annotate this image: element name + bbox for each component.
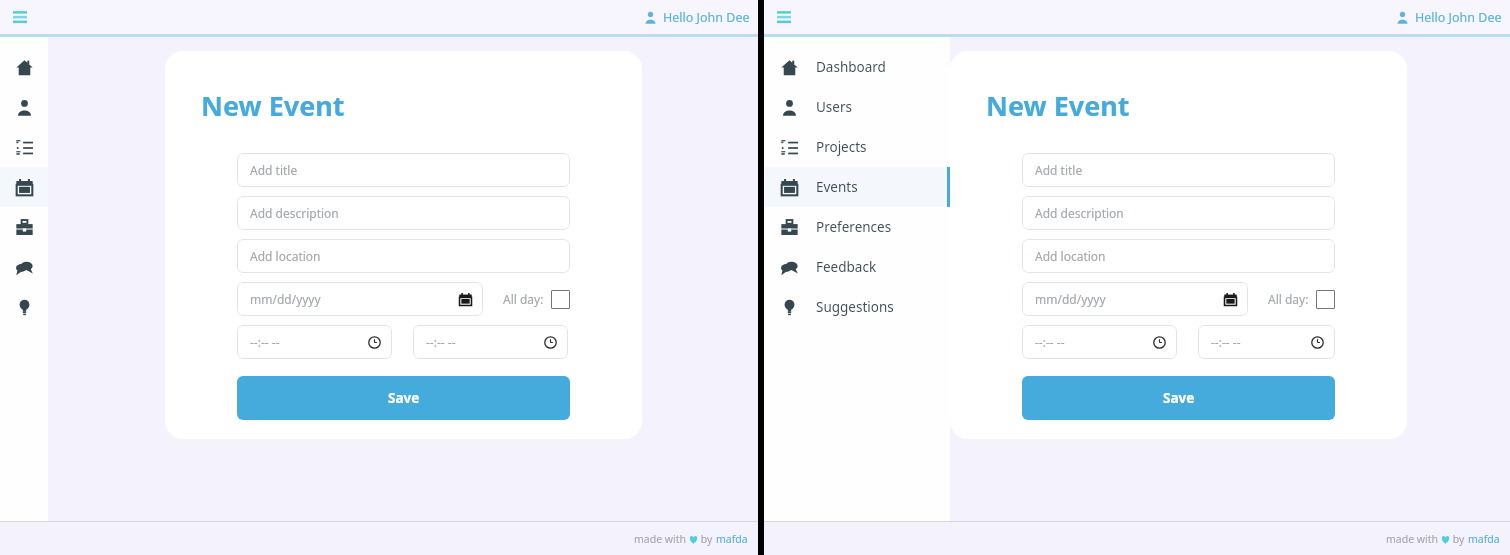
button[interactable]: --:-- -- [413, 325, 568, 359]
button[interactable]: Feedback [0, 247, 48, 287]
staticText: Preferences [816, 218, 892, 236]
staticText: Add location [250, 248, 321, 264]
button[interactable]: Hello John Dee [1396, 9, 1502, 26]
button[interactable]: Add title [1022, 153, 1335, 187]
button[interactable]: Save [1022, 376, 1335, 420]
button[interactable]: Users [0, 87, 48, 127]
button[interactable]: Add description [1022, 196, 1335, 230]
staticText: Save [388, 389, 420, 407]
button[interactable]: Add title [237, 153, 570, 187]
button[interactable]: --:-- -- [1022, 325, 1177, 359]
staticText: by [1450, 532, 1468, 546]
button[interactable]: Projects [0, 127, 48, 167]
button[interactable]: --:-- -- [237, 325, 392, 359]
staticText: Suggestions [816, 298, 894, 316]
button[interactable]: Add location [237, 239, 570, 273]
staticText: --:-- -- [426, 334, 456, 350]
staticText: --:-- -- [1035, 334, 1065, 350]
button[interactable]: Feedback [764, 247, 950, 287]
button[interactable]: Save [237, 376, 570, 420]
button[interactable]: Projects [764, 127, 950, 167]
staticText: --:-- -- [250, 334, 280, 350]
staticText: Feedback [816, 258, 877, 276]
staticText: made with [1386, 532, 1441, 546]
button[interactable]: Add description [237, 196, 570, 230]
staticText: All day: [503, 291, 544, 307]
staticText: All day: [1268, 291, 1309, 307]
button[interactable]: Suggestions [764, 287, 950, 327]
button[interactable]: Events [0, 167, 48, 207]
staticText: Projects [816, 138, 867, 156]
staticText: Dashboard [816, 58, 886, 76]
button[interactable]: Menu [772, 5, 796, 29]
button[interactable]: Preferences [764, 207, 950, 247]
button[interactable]: All day [1316, 290, 1335, 309]
staticText: mafda [716, 532, 748, 546]
button[interactable]: Add location [1022, 239, 1335, 273]
button[interactable]: Dashboard [0, 47, 48, 87]
staticText: New Event [986, 87, 1130, 124]
button[interactable]: Suggestions [0, 287, 48, 327]
button[interactable]: Dashboard [764, 47, 950, 87]
button[interactable]: mafda [1468, 532, 1500, 546]
staticText: mm/dd/yyyy [1035, 291, 1106, 307]
staticText: Add description [250, 205, 339, 221]
staticText: by [698, 532, 716, 546]
button[interactable]: mm/dd/yyyy [1022, 282, 1248, 316]
button[interactable]: Preferences [0, 207, 48, 247]
staticText: made with [634, 532, 689, 546]
staticText: Events [816, 178, 858, 196]
staticText: Users [816, 98, 852, 116]
staticText: mafda [1468, 532, 1500, 546]
button[interactable]: --:-- -- [1198, 325, 1335, 359]
staticText: Save [1163, 389, 1195, 407]
staticText: Hello John Dee [1415, 9, 1502, 26]
staticText: --:-- -- [1211, 334, 1241, 350]
button[interactable]: Events [764, 167, 950, 207]
staticText: Add title [250, 162, 298, 178]
staticText: Add location [1035, 248, 1106, 264]
staticText: New Event [201, 87, 345, 124]
button[interactable]: mafda [716, 532, 748, 546]
staticText: Add title [1035, 162, 1083, 178]
button[interactable]: Hello John Dee [644, 9, 750, 26]
staticText: Add description [1035, 205, 1124, 221]
button[interactable]: Menu [8, 5, 32, 29]
button[interactable]: mm/dd/yyyy [237, 282, 483, 316]
button[interactable]: Users [764, 87, 950, 127]
staticText: mm/dd/yyyy [250, 291, 321, 307]
staticText: Hello John Dee [663, 9, 750, 26]
button[interactable]: All day [551, 290, 570, 309]
